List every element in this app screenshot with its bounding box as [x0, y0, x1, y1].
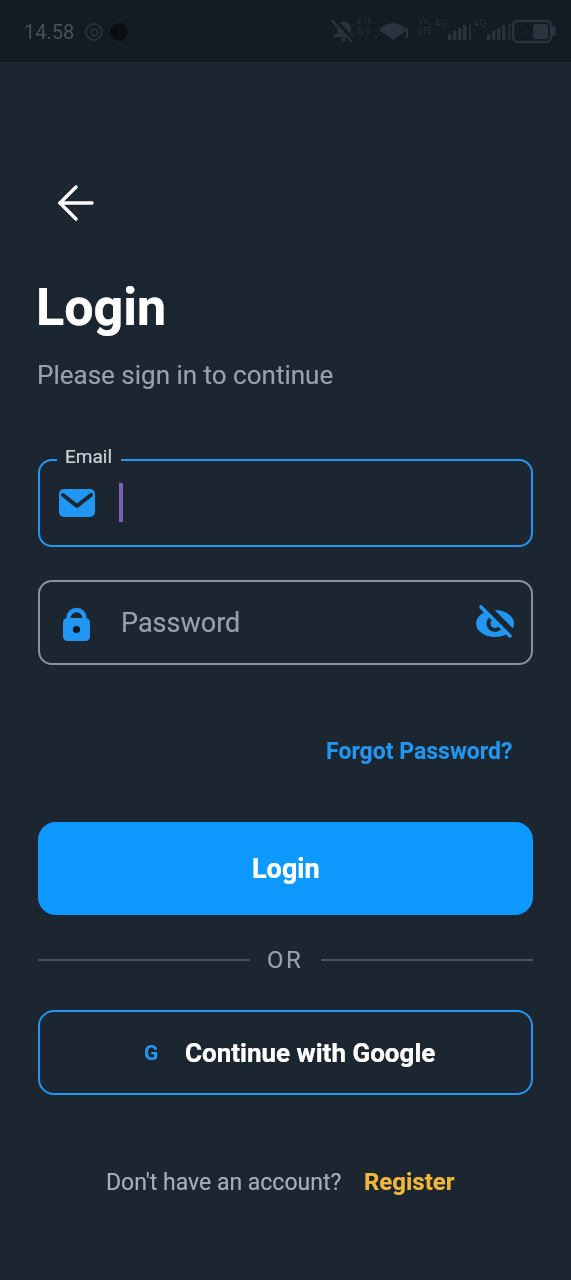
button[interactable] [38, 459, 533, 547]
button[interactable]: Password [38, 580, 533, 665]
staticText: Please sign in to continue [37, 360, 334, 390]
staticText: Email [65, 445, 113, 467]
staticText: Login [36, 277, 167, 338]
button[interactable]: G [38, 1010, 533, 1095]
staticText: Password [121, 607, 241, 639]
button[interactable]: Forgot Password? [326, 738, 513, 765]
staticText: Don't have an account? [106, 1169, 342, 1196]
button[interactable] [51, 179, 99, 227]
staticText: 4G [434, 17, 448, 30]
staticText: G [144, 1041, 159, 1066]
staticText: 14.58 [24, 20, 75, 43]
button[interactable]: Login [38, 822, 533, 915]
staticText: Continue with Google [185, 1038, 436, 1068]
staticText: OR [267, 946, 304, 974]
staticText: 4G [473, 17, 487, 30]
staticText: Login [252, 853, 320, 885]
staticText: 618 B/s [357, 16, 373, 36]
staticText: Vo LTE [418, 16, 433, 36]
button[interactable]: Register [364, 1168, 455, 1196]
